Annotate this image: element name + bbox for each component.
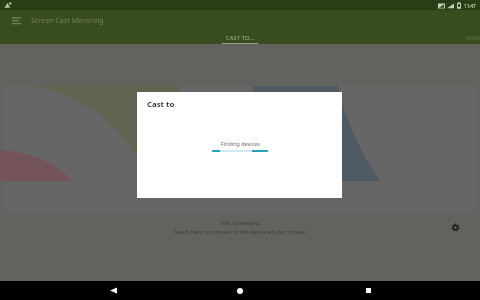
button[interactable] (4, 86, 476, 212)
button[interactable]: Recent apps (353, 281, 383, 300)
staticText: Finding devices (221, 140, 260, 147)
button[interactable]: Navigation menu (8, 13, 24, 29)
staticText: CAST TO... (226, 34, 255, 41)
button[interactable]: Home (225, 281, 255, 300)
staticText: Screen Cast Mirroring (31, 16, 104, 26)
button[interactable]: Not connected. (4, 214, 476, 240)
button[interactable]: CAST TO... (204, 32, 276, 44)
staticText: Cast to (147, 99, 175, 110)
staticText: 11:47 (464, 3, 476, 9)
staticText: Touch here to connect to the device of y… (173, 228, 307, 236)
staticText: Not connected. (220, 219, 261, 227)
button[interactable]: MIRROR (452, 32, 480, 44)
staticText: MIRROR (466, 34, 480, 41)
button[interactable]: Settings (446, 218, 464, 236)
button[interactable]: Back (98, 281, 128, 300)
